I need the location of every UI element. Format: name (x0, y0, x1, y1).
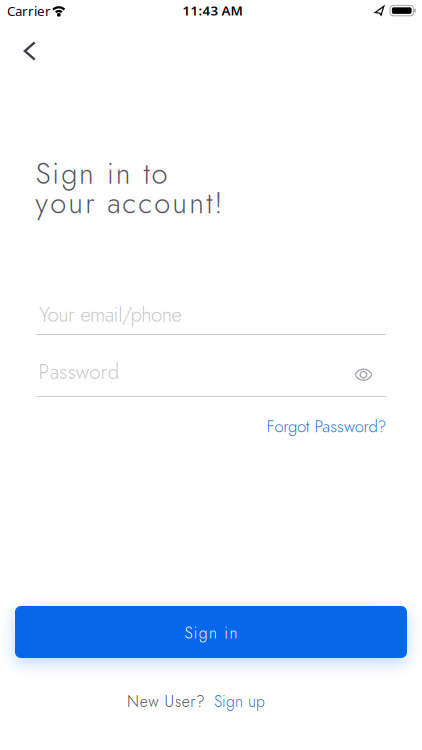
button[interactable]: Sign up (214, 690, 265, 713)
staticText: N (127, 690, 139, 713)
button[interactable]: S (15, 606, 407, 658)
button[interactable] (346, 360, 380, 390)
staticText: i (107, 153, 114, 195)
staticText: c (122, 182, 136, 224)
staticText: u (68, 182, 83, 224)
staticText: P (38, 357, 49, 387)
staticText: c (138, 182, 152, 224)
staticText: o (151, 153, 167, 195)
staticText: n (116, 153, 131, 195)
staticText: s (59, 357, 67, 387)
staticText: e (182, 690, 190, 713)
staticText: d (108, 357, 119, 387)
staticText: n (229, 622, 237, 644)
staticText: Carrier (7, 2, 51, 20)
staticText: a (50, 357, 59, 387)
staticText: n (79, 153, 94, 195)
staticText: t (206, 182, 212, 224)
staticText: S (185, 622, 193, 644)
staticText: r (100, 357, 107, 387)
staticText: r (190, 690, 195, 713)
staticText: i (52, 153, 59, 195)
staticText: S (35, 153, 50, 195)
staticText: Sign up (214, 690, 265, 713)
staticText: Your email/phone (39, 300, 181, 329)
staticText: n (189, 182, 204, 224)
staticText: 11:43 AM (182, 1, 242, 19)
staticText: y (35, 182, 48, 224)
button[interactable]: Your email/phone (36, 296, 385, 335)
staticText: Forgot Password? (267, 414, 386, 439)
staticText: t (144, 153, 150, 195)
button[interactable]: P (36, 353, 385, 397)
staticText: u (172, 182, 187, 224)
button[interactable] (8, 29, 52, 73)
staticText: g (199, 622, 208, 644)
staticText: ! (214, 182, 222, 224)
staticText: e (140, 690, 148, 713)
staticText: U (164, 690, 174, 713)
staticText: s (175, 690, 181, 713)
button[interactable]: Forgot Password? (267, 414, 386, 439)
staticText: r (85, 182, 94, 224)
staticText: ? (196, 690, 205, 713)
staticText: w (148, 690, 158, 713)
staticText: i (224, 622, 228, 644)
staticText: g (61, 153, 77, 195)
staticText: o (50, 182, 66, 224)
staticText: i (194, 622, 198, 644)
staticText: s (67, 357, 75, 387)
staticText: a (107, 182, 120, 224)
staticText: o (154, 182, 170, 224)
staticText: o (89, 357, 100, 387)
staticText: n (209, 622, 217, 644)
staticText: w (76, 357, 89, 387)
